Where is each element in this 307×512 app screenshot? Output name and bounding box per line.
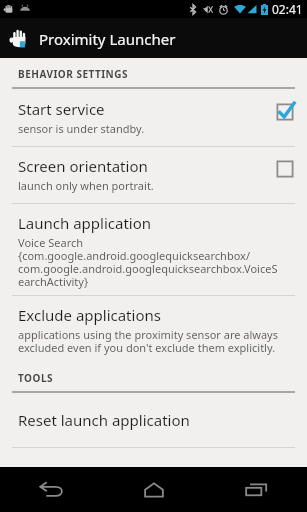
staticText: BEHAVIOR SETTINGS [18, 67, 128, 81]
staticText: Proximity Launcher [39, 29, 176, 49]
other: App icon [7, 27, 30, 50]
staticText: launch only when portrait. [18, 178, 154, 193]
button[interactable]: Reset launch application [0, 393, 307, 447]
staticText: Screen orientation [18, 156, 148, 176]
button[interactable]: Home [103, 467, 205, 512]
staticText: Start service [18, 99, 105, 119]
button[interactable]: Back [0, 467, 103, 512]
button[interactable]: Checked [275, 102, 295, 122]
button[interactable]: Exclude applications [0, 296, 307, 365]
staticText: Exclude applications [18, 305, 161, 325]
staticText: Launch application [18, 213, 152, 233]
staticText: 02:41 [272, 1, 303, 17]
button[interactable]: Unchecked [275, 159, 295, 179]
button[interactable]: Recents [205, 467, 307, 512]
staticText: TOOLS [18, 371, 53, 385]
button[interactable]: Start service [0, 89, 307, 146]
staticText: Reset launch application [18, 410, 190, 430]
button[interactable]: Screen orientation [0, 147, 307, 203]
staticText: Voice Search {com.google.android.googleq… [18, 235, 278, 289]
staticText: sensor is under standby. [18, 121, 145, 136]
staticText: applications using the proximity sensor … [18, 327, 278, 355]
button[interactable]: Launch application [0, 204, 307, 295]
